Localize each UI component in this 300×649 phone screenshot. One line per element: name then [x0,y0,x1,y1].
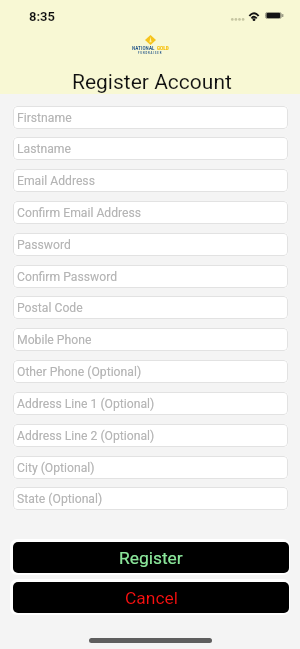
button[interactable]: Cancel [10,579,290,615]
button[interactable]: Confirm Password [13,265,288,288]
staticText: State (Optional) [17,492,103,506]
staticText: Register Account [72,70,232,95]
staticText: Confirm Email Address [17,206,142,220]
button[interactable]: Register [10,539,290,575]
button[interactable]: Confirm Email Address [13,201,288,224]
other: Battery [265,12,283,19]
button[interactable]: Password [13,233,288,256]
button[interactable]: Mobile Phone [13,328,288,351]
button[interactable]: Postal Code [13,296,288,319]
other: Wi-Fi [248,12,260,21]
other: Cellular signal [231,11,244,21]
staticText: 8:35 [29,9,56,24]
button[interactable]: City (Optional) [13,456,288,479]
staticText: Address Line 1 (Optional) [17,397,155,411]
staticText: Register [119,548,183,568]
button[interactable]: Address Line 1 (Optional) [13,392,288,415]
staticText: City (Optional) [17,461,95,475]
staticText: Other Phone (Optional) [17,365,142,379]
button[interactable]: Lastname [13,137,288,160]
staticText: FUNDRAISER [138,51,163,55]
staticText: Confirm Password [17,270,118,284]
staticText: Firstname [17,111,72,125]
staticText: Email Address [17,174,95,188]
staticText: Password [17,238,71,252]
staticText: Address Line 2 (Optional) [17,429,155,443]
staticText: Cancel [125,588,178,608]
staticText: Postal Code [17,301,83,315]
button[interactable]: Other Phone (Optional) [13,360,288,383]
staticText: GOLD [157,45,169,51]
button[interactable]: Address Line 2 (Optional) [13,424,288,447]
button[interactable]: Firstname [13,106,288,129]
button[interactable]: State (Optional) [13,487,288,510]
staticText: Lastname [17,142,71,156]
staticText: Mobile Phone [17,333,92,347]
staticText: NATIONAL [132,45,155,51]
button[interactable]: Email Address [13,169,288,192]
